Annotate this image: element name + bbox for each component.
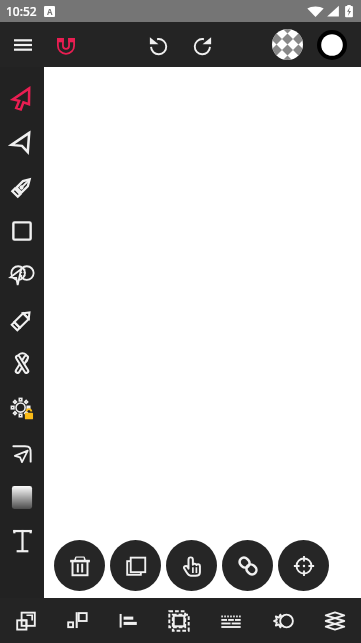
button[interactable]: Gradient (0, 475, 44, 519)
button[interactable]: Curve (0, 431, 44, 475)
button[interactable]: Snap (49, 28, 82, 61)
button[interactable]: Delete (54, 540, 105, 591)
button[interactable]: Keyboard (205, 598, 257, 643)
button[interactable]: Rectangle (0, 209, 44, 253)
button[interactable]: Arrange (0, 598, 51, 643)
button[interactable]: Distribute (51, 598, 102, 643)
button[interactable]: Fill color (271, 28, 304, 61)
button[interactable]: Select (0, 76, 44, 120)
button[interactable]: Scissors (0, 342, 44, 386)
button[interactable]: Stroke color (315, 28, 348, 61)
staticText: 10:52 (6, 3, 37, 19)
button[interactable]: Direct select (0, 120, 44, 164)
button[interactable]: Link (222, 540, 273, 591)
button[interactable]: Text (0, 519, 44, 563)
button[interactable]: Select all (153, 598, 205, 643)
button[interactable]: Effects (257, 598, 309, 643)
staticText: A (47, 6, 53, 17)
button[interactable]: Align center (278, 540, 329, 591)
button[interactable]: Align (102, 598, 153, 643)
button[interactable]: Duplicate (110, 540, 161, 591)
button[interactable]: Transform (0, 387, 44, 431)
button[interactable]: Pen (0, 165, 44, 209)
button[interactable]: Pencil (0, 298, 44, 342)
button[interactable]: Touch (166, 540, 217, 591)
button[interactable]: Undo (140, 28, 174, 62)
button[interactable]: Layers (309, 598, 361, 643)
button[interactable]: Redo (186, 28, 220, 62)
button[interactable]: Menu (6, 28, 39, 61)
button[interactable]: Shape builder (0, 253, 44, 297)
